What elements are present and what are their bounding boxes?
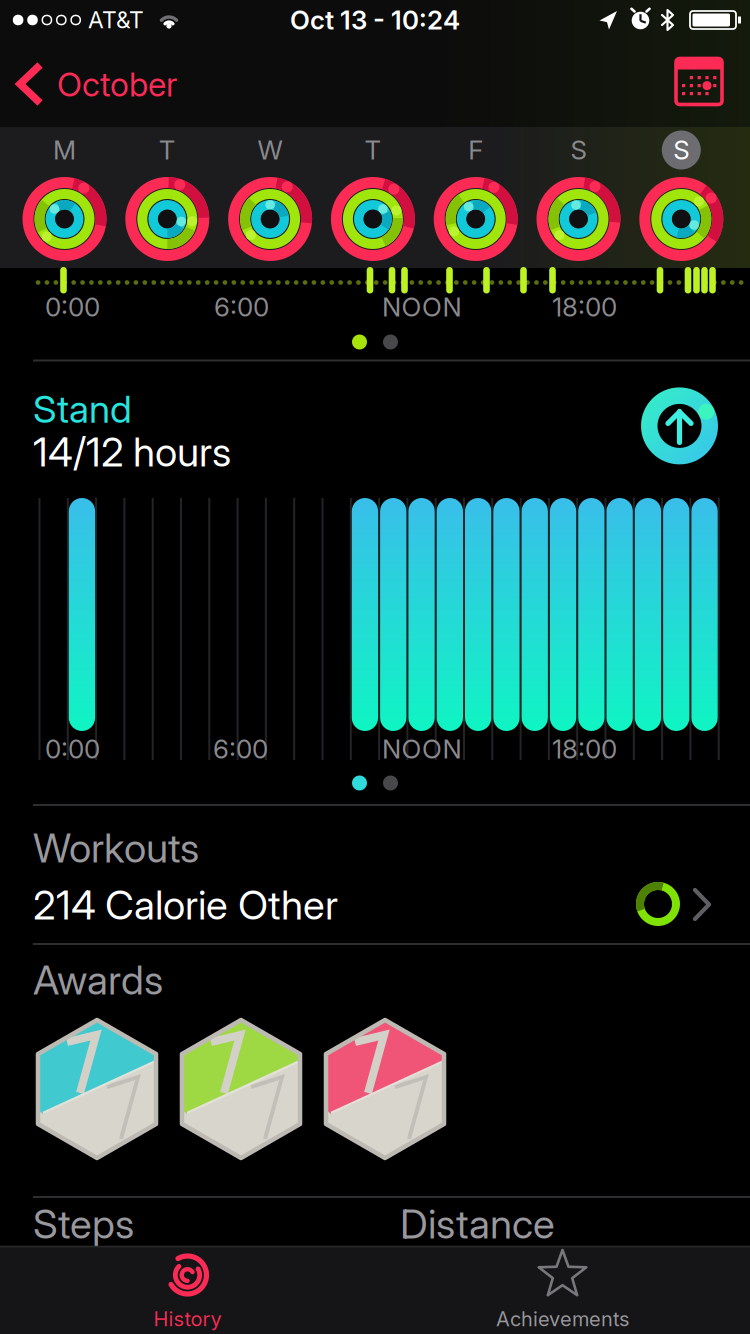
staticText: NOON — [382, 291, 461, 323]
button[interactable]: Wednesday — [220, 127, 320, 268]
staticText: 6:00 — [214, 291, 269, 323]
staticText: F — [468, 134, 483, 166]
staticText: Steps — [33, 1200, 134, 1248]
button[interactable]: October — [10, 54, 250, 114]
staticText: History — [153, 1307, 221, 1331]
staticText: 6:00 — [213, 733, 268, 765]
staticText: 18:00 — [552, 733, 617, 765]
staticText: Calorie Other — [105, 881, 338, 929]
staticText: October — [57, 64, 177, 104]
button[interactable]: Monday — [14, 127, 114, 268]
button[interactable]: Sunday — [631, 127, 731, 268]
staticText: S — [570, 134, 586, 166]
staticText: T — [159, 134, 176, 166]
button[interactable]: Calendar — [674, 56, 724, 106]
staticText: Achievements — [496, 1307, 629, 1331]
staticText: 18:00 — [552, 291, 617, 323]
staticText: M — [53, 134, 76, 166]
staticText: AT&T — [88, 6, 144, 34]
staticText: W — [258, 134, 283, 166]
staticText: Workouts — [33, 824, 199, 872]
button[interactable]: Award — [323, 1015, 447, 1163]
staticText: 214 — [33, 881, 96, 929]
button[interactable]: Award — [35, 1015, 159, 1163]
staticText: Oct 13 - 10:24 — [290, 4, 460, 36]
staticText: NOON — [382, 733, 461, 765]
button[interactable]: Friday — [426, 127, 526, 268]
staticText: 0:00 — [45, 733, 100, 765]
staticText: 0:00 — [45, 291, 100, 323]
button[interactable]: History — [17, 1247, 357, 1333]
staticText: Distance — [400, 1200, 555, 1248]
staticText: T — [364, 134, 381, 166]
button[interactable]: Award — [179, 1015, 303, 1163]
staticText: hours — [133, 428, 231, 476]
staticText: Stand — [33, 386, 132, 432]
button[interactable]: 214 — [0, 868, 750, 942]
staticText: Awards — [33, 956, 163, 1004]
staticText: S — [673, 134, 689, 166]
button[interactable]: Thursday — [323, 127, 423, 268]
button[interactable]: Tuesday — [117, 127, 217, 268]
staticText: 14/12 — [33, 428, 124, 476]
button[interactable]: Saturday — [528, 127, 628, 268]
button[interactable]: Achievements — [392, 1247, 732, 1333]
